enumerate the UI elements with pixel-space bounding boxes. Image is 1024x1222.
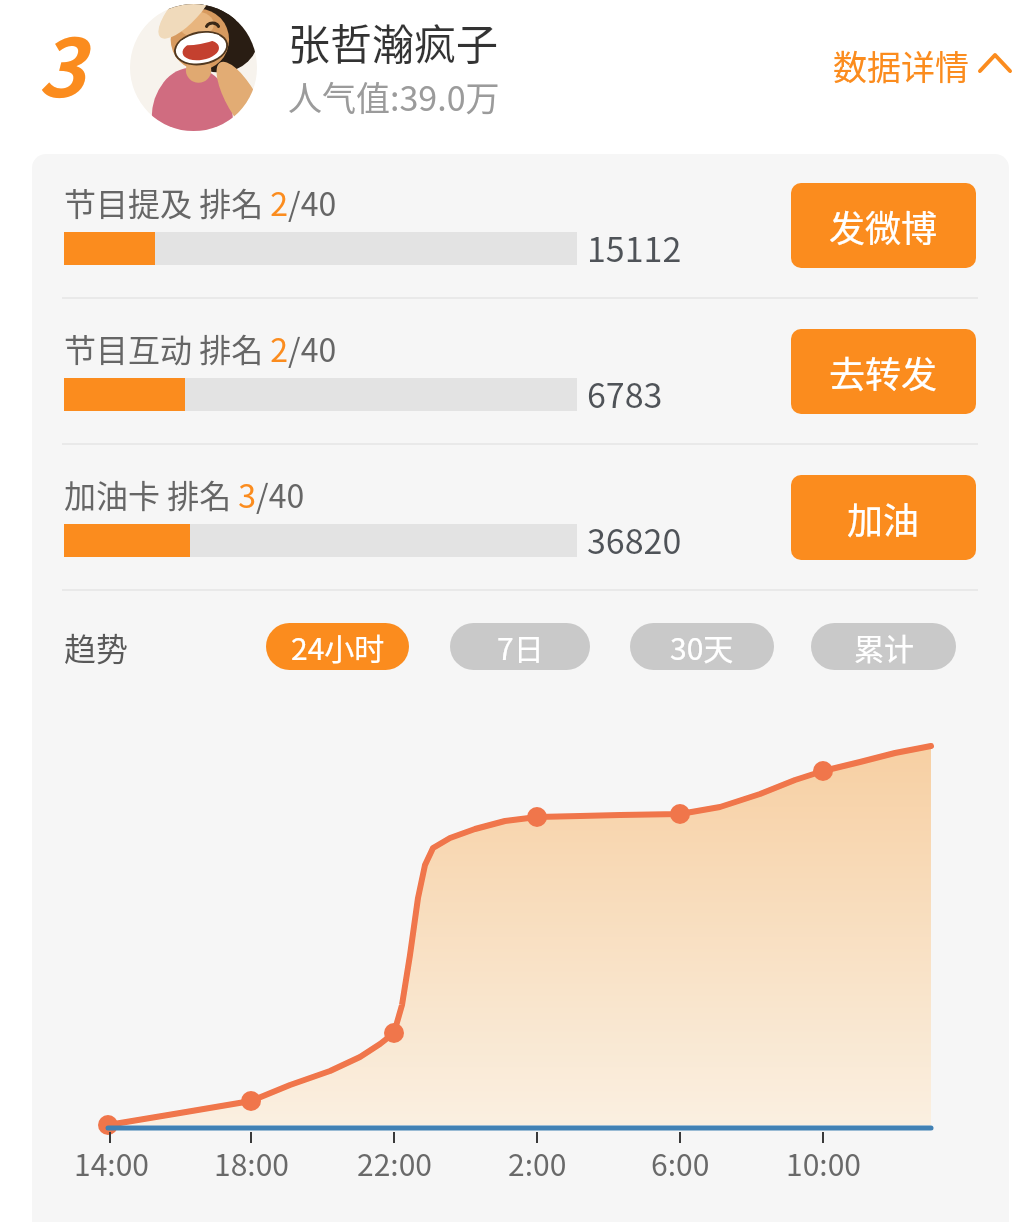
button[interactable]: 发微博 (791, 183, 976, 268)
staticText: 节目互动 排名 2/40 (64, 325, 337, 371)
button[interactable]: 30天 (630, 623, 774, 670)
button[interactable]: 7日 (450, 623, 590, 670)
button[interactable]: 数据详情 (830, 40, 1012, 92)
staticText: 6783 (587, 369, 663, 418)
staticText: 趋势 (64, 624, 129, 670)
staticText: 去转发 (829, 346, 938, 398)
staticText: 数据详情 (833, 41, 969, 90)
button[interactable]: 24小时 (266, 623, 409, 670)
button[interactable]: 加油 (791, 475, 976, 560)
button[interactable]: 去转发 (791, 329, 976, 414)
staticText: 22:00 (357, 1141, 432, 1184)
staticText: 10:00 (786, 1141, 861, 1184)
button[interactable]: 累计 (811, 623, 956, 670)
staticText: 3 (38, 4, 86, 120)
staticText: 6:00 (651, 1141, 710, 1184)
staticText: 累计 (854, 625, 914, 668)
button[interactable] (130, 4, 257, 131)
staticText: 加油 (847, 492, 920, 544)
staticText: 18:00 (214, 1141, 289, 1184)
staticText: 张哲瀚疯子 (288, 11, 499, 72)
staticText: 7日 (497, 625, 544, 668)
staticText: 30天 (670, 625, 734, 668)
staticText: 15112 (587, 223, 682, 272)
staticText: 24小时 (291, 625, 385, 668)
staticText: 节目提及 排名 2/40 (64, 179, 337, 225)
staticText: 14:00 (74, 1141, 149, 1184)
staticText: 2:00 (508, 1141, 567, 1184)
staticText: 发微博 (829, 200, 938, 252)
staticText: 人气值:39.0万 (288, 72, 500, 121)
staticText: 加油卡 排名 3/40 (64, 471, 305, 517)
staticText: 36820 (587, 515, 682, 564)
